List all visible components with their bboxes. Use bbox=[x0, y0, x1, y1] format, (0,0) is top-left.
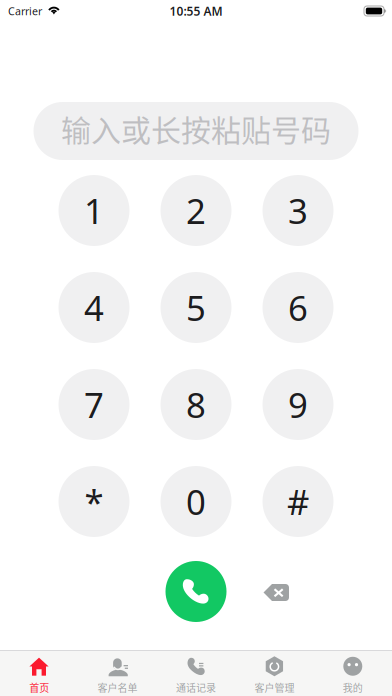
staticText: 通话记录 bbox=[176, 680, 216, 695]
button[interactable]: 我的 bbox=[314, 649, 392, 696]
staticText: 1 bbox=[84, 187, 104, 233]
button[interactable]: * bbox=[58, 466, 129, 537]
button[interactable]: # bbox=[262, 466, 333, 537]
staticText: 2 bbox=[186, 187, 206, 233]
button[interactable]: 4 bbox=[58, 272, 129, 343]
staticText: 6 bbox=[288, 284, 308, 330]
button[interactable]: Call bbox=[165, 561, 226, 622]
button[interactable]: 客户名单 bbox=[78, 649, 157, 696]
staticText: 8 bbox=[186, 381, 206, 427]
staticText: 0 bbox=[186, 478, 206, 524]
button[interactable]: 9 bbox=[262, 369, 333, 440]
staticText: # bbox=[287, 478, 309, 524]
staticText: 客户管理 bbox=[254, 680, 294, 695]
button[interactable]: 首页 bbox=[0, 649, 78, 696]
button[interactable]: 8 bbox=[160, 369, 231, 440]
staticText: 5 bbox=[186, 284, 206, 330]
button[interactable]: 通话记录 bbox=[157, 649, 235, 696]
staticText: 输入或长按粘贴号码 bbox=[61, 107, 331, 150]
staticText: 3 bbox=[288, 187, 308, 233]
button[interactable]: 6 bbox=[262, 272, 333, 343]
button[interactable]: 5 bbox=[160, 272, 231, 343]
button[interactable]: 3 bbox=[262, 175, 333, 246]
button[interactable]: 客户管理 bbox=[235, 649, 314, 696]
button[interactable]: 1 bbox=[58, 175, 129, 246]
button[interactable]: 输入或长按粘贴号码 bbox=[33, 102, 358, 160]
staticText: 首页 bbox=[29, 680, 49, 695]
button[interactable]: 2 bbox=[160, 175, 231, 246]
staticText: 9 bbox=[288, 381, 308, 427]
staticText: Carrier bbox=[8, 4, 42, 18]
button[interactable]: Delete bbox=[251, 572, 301, 613]
staticText: 客户名单 bbox=[98, 680, 138, 695]
staticText: 10:55 AM bbox=[169, 3, 222, 19]
staticText: 我的 bbox=[343, 680, 363, 695]
staticText: 4 bbox=[84, 284, 104, 330]
staticText: * bbox=[84, 478, 103, 524]
staticText: 7 bbox=[84, 381, 104, 427]
button[interactable]: 0 bbox=[160, 466, 231, 537]
button[interactable]: 7 bbox=[58, 369, 129, 440]
